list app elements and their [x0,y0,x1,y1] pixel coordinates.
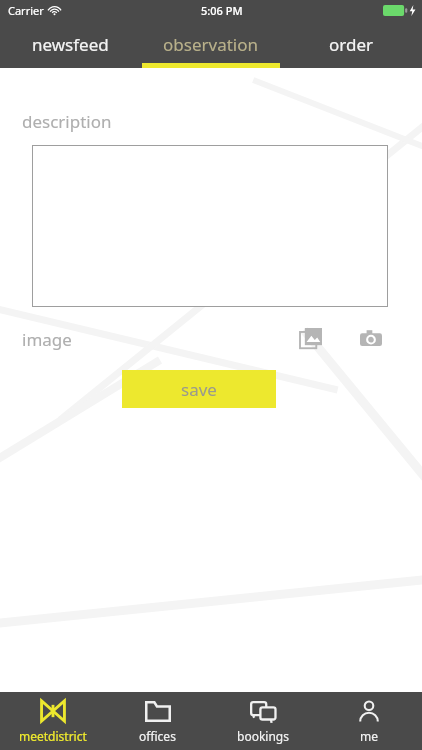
button[interactable]: Pick image from gallery [294,322,328,356]
button[interactable] [32,145,388,307]
staticText: Carrier [8,3,44,18]
button[interactable]: newsfeed [0,20,140,68]
staticText: observation [163,33,258,56]
button[interactable]: observation [140,20,281,68]
staticText: offices [139,728,176,744]
button[interactable]: bookings [210,692,316,750]
staticText: 5:06 PM [201,3,243,18]
staticText: me [360,728,378,744]
staticText: description [22,110,112,133]
staticText: save [181,378,217,401]
staticText: meetdistrict [19,728,87,744]
staticText: newsfeed [32,33,109,56]
button[interactable]: me [316,692,422,750]
button[interactable]: save [122,370,276,408]
button[interactable]: offices [105,692,210,750]
button[interactable]: meetdistrict [0,692,105,750]
staticText: image [22,328,72,351]
button[interactable]: order [281,20,422,68]
staticText: bookings [237,728,289,744]
staticText: order [329,33,374,56]
button[interactable]: Take photo with camera [354,322,388,356]
